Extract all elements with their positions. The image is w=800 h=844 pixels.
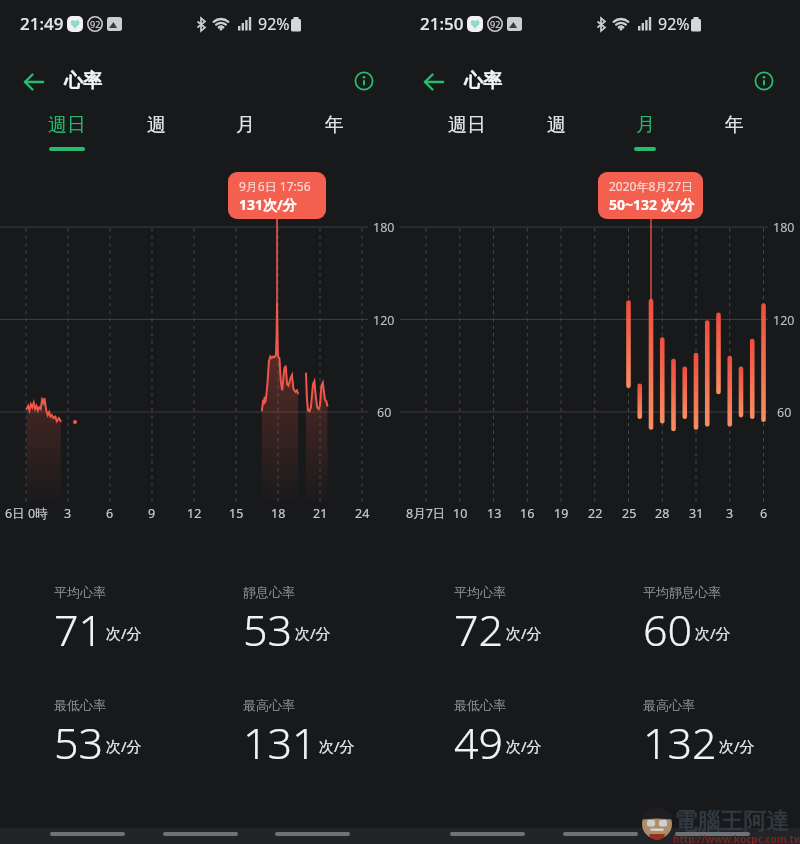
staticText: 25: [622, 505, 637, 522]
staticText: 2020年8月27日: [609, 178, 694, 194]
button[interactable]: [450, 832, 525, 836]
staticText: 120: [373, 312, 395, 329]
staticText: 週日: [48, 113, 86, 137]
staticText: 53: [243, 600, 293, 650]
staticText: 平均靜息心率: [643, 584, 721, 600]
staticText: 180: [373, 219, 395, 236]
staticText: 21: [313, 505, 328, 522]
button[interactable]: [275, 832, 350, 836]
button[interactable]: 9月6日 17:56: [239, 178, 326, 219]
staticText: 12: [187, 505, 202, 522]
staticText: 9: [148, 505, 156, 522]
staticText: 49: [454, 713, 504, 763]
staticText: 131: [243, 713, 317, 763]
staticText: 72: [454, 600, 504, 650]
button[interactable]: 週: [512, 110, 600, 158]
staticText: 6日 0時: [5, 505, 48, 522]
button[interactable]: 年: [690, 110, 778, 158]
staticText: 最低心率: [454, 697, 506, 713]
button[interactable]: 月: [201, 110, 289, 158]
staticText: 22: [588, 505, 603, 522]
staticText: 最低心率: [54, 697, 106, 713]
staticText: 132: [643, 713, 717, 763]
staticText: 月: [636, 113, 655, 137]
staticText: 週: [147, 113, 166, 137]
staticText: 6: [106, 505, 114, 522]
staticText: 月: [236, 113, 255, 137]
staticText: 60: [777, 404, 792, 421]
staticText: 年: [725, 113, 744, 137]
staticText: 年: [325, 113, 344, 137]
button[interactable]: [18, 66, 50, 98]
button[interactable]: 週: [112, 110, 200, 158]
button[interactable]: [352, 69, 376, 93]
staticText: 50~132 次/分: [609, 195, 695, 214]
staticText: http://www.kocpc.com.tw: [673, 832, 800, 844]
staticText: 19: [554, 505, 569, 522]
staticText: 21:49: [20, 12, 64, 35]
staticText: 92: [90, 18, 101, 30]
staticText: 6: [760, 505, 768, 522]
staticText: 最高心率: [643, 697, 695, 713]
staticText: 次/分: [719, 736, 755, 756]
staticText: 心率: [64, 69, 102, 93]
button[interactable]: 月: [601, 110, 689, 158]
staticText: 31: [689, 505, 704, 522]
staticText: 60: [377, 404, 392, 421]
staticText: 60: [643, 600, 693, 650]
staticText: 平均心率: [454, 584, 506, 600]
button[interactable]: 年: [290, 110, 378, 158]
button[interactable]: [418, 66, 450, 98]
staticText: 28: [655, 505, 670, 522]
staticText: 180: [773, 219, 795, 236]
button[interactable]: [752, 69, 776, 93]
staticText: 8月7日: [406, 505, 446, 522]
staticText: 9月6日 17:56: [239, 178, 311, 194]
staticText: 53: [54, 713, 104, 763]
staticText: 次/分: [319, 736, 355, 756]
button[interactable]: [675, 832, 750, 836]
staticText: 次/分: [106, 623, 142, 643]
staticText: 次/分: [506, 736, 542, 756]
staticText: 週日: [448, 113, 486, 137]
staticText: 15: [229, 505, 244, 522]
staticText: 21:50: [420, 12, 464, 35]
staticText: 平均心率: [54, 584, 106, 600]
button[interactable]: 週日: [23, 110, 111, 158]
button[interactable]: 週日: [423, 110, 511, 158]
staticText: 16: [520, 505, 535, 522]
staticText: 次/分: [506, 623, 542, 643]
button[interactable]: [163, 832, 238, 836]
staticText: 心率: [464, 69, 502, 93]
staticText: 92: [490, 18, 501, 30]
button[interactable]: [50, 832, 125, 836]
staticText: 92%: [658, 13, 690, 35]
staticText: 10: [453, 505, 468, 522]
staticText: 18: [271, 505, 286, 522]
staticText: 3: [64, 505, 72, 522]
staticText: 次/分: [295, 623, 331, 643]
button[interactable]: 2020年8月27日: [609, 178, 703, 219]
staticText: 13: [487, 505, 502, 522]
staticText: 92%: [258, 13, 290, 35]
staticText: 120: [773, 312, 795, 329]
staticText: 次/分: [695, 623, 731, 643]
staticText: 週: [547, 113, 566, 137]
staticText: 電腦王阿達: [674, 807, 789, 836]
staticText: 次/分: [106, 736, 142, 756]
staticText: 71: [54, 600, 104, 650]
staticText: 靜息心率: [243, 584, 295, 600]
staticText: 最高心率: [243, 697, 295, 713]
staticText: 3: [726, 505, 734, 522]
staticText: 131次/分: [239, 195, 297, 214]
staticText: 24: [355, 505, 370, 522]
button[interactable]: [563, 832, 638, 836]
